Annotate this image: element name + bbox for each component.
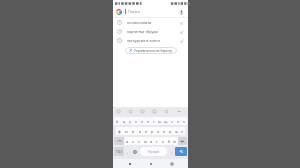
- button[interactable]: экскурсия в кинсл: [113, 36, 188, 45]
- staticText: я: [126, 139, 129, 144]
- button[interactable]: й: [114, 117, 121, 125]
- button[interactable]: с: [136, 137, 142, 145]
- staticText: л: [163, 129, 166, 134]
- button[interactable]: т: [154, 137, 160, 145]
- staticText: ц: [123, 119, 126, 124]
- button[interactable]: ы: [123, 127, 130, 135]
- staticText: б: [168, 139, 171, 144]
- staticText: к: [135, 119, 138, 124]
- button[interactable]: н: [145, 117, 151, 125]
- button[interactable]: к: [133, 117, 139, 125]
- staticText: т: [156, 139, 158, 144]
- staticText: ж: [175, 129, 178, 134]
- staticText: с: [138, 139, 140, 144]
- staticText: поликлиника: [127, 20, 152, 25]
- button[interactable]: Space: [140, 147, 167, 156]
- staticText: г: [153, 119, 155, 124]
- button[interactable]: и: [148, 137, 154, 145]
- button[interactable]: щ: [163, 117, 169, 125]
- button[interactable]: р: [149, 127, 155, 135]
- button[interactable]: ж: [173, 127, 179, 135]
- button[interactable]: з: [169, 117, 175, 125]
- staticText: щ: [164, 119, 168, 124]
- button[interactable]: х: [175, 117, 181, 125]
- staticText: ф: [118, 129, 121, 134]
- button[interactable]: More options: [176, 109, 182, 114]
- button[interactable]: Поиск: [113, 6, 188, 17]
- button[interactable]: Shift: [114, 137, 124, 145]
- staticText: картинки сбруди: [127, 29, 158, 34]
- staticText: ъ: [183, 119, 186, 124]
- staticText: н: [147, 119, 150, 124]
- button[interactable]: ъ: [181, 117, 187, 125]
- staticText: ?123: [116, 150, 123, 154]
- button[interactable]: Voice search: [177, 8, 185, 16]
- button[interactable]: ?123: [114, 147, 124, 156]
- button[interactable]: Stickers: [152, 109, 157, 114]
- button[interactable]: э: [179, 127, 185, 135]
- button[interactable]: ш: [157, 117, 163, 125]
- button[interactable]: ь: [160, 137, 166, 145]
- button[interactable]: ю: [172, 137, 178, 145]
- staticText: х: [177, 119, 179, 124]
- button[interactable]: Back: [125, 159, 134, 168]
- button[interactable]: Backspace: [178, 137, 187, 145]
- button[interactable]: Home: [146, 159, 155, 168]
- staticText: а: [139, 129, 142, 134]
- button[interactable]: м: [142, 137, 148, 145]
- button[interactable]: ц: [121, 117, 127, 125]
- button[interactable]: Search: [175, 147, 187, 156]
- staticText: й: [116, 119, 119, 124]
- button[interactable]: а: [137, 127, 143, 135]
- button[interactable]: Recents: [167, 159, 176, 168]
- staticText: у: [129, 119, 131, 124]
- button[interactable]: поликлиника: [113, 18, 188, 27]
- button[interactable]: Emoji: [128, 109, 133, 114]
- staticText: р: [151, 129, 154, 134]
- staticText: д: [169, 129, 172, 134]
- button[interactable]: Keyboard settings: [131, 146, 139, 157]
- staticText: о: [157, 129, 160, 134]
- button[interactable]: ч: [130, 137, 136, 145]
- button[interactable]: п: [143, 127, 149, 135]
- button[interactable]: GIF: [140, 109, 145, 114]
- staticText: Русский: [148, 150, 159, 154]
- staticText: ь: [162, 139, 165, 144]
- button[interactable]: ф: [116, 127, 123, 135]
- button[interactable]: о: [155, 127, 161, 135]
- button[interactable]: Settings: [164, 109, 169, 114]
- button[interactable]: в: [130, 127, 137, 135]
- staticText: ш: [158, 119, 162, 124]
- staticText: м: [144, 139, 147, 144]
- button[interactable]: Comma: [124, 146, 131, 157]
- staticText: ю: [173, 139, 177, 144]
- button[interactable]: г: [151, 117, 157, 125]
- button[interactable]: е: [139, 117, 145, 125]
- button[interactable]: д: [167, 127, 173, 135]
- staticText: ч: [132, 139, 135, 144]
- staticText: .: [171, 149, 173, 154]
- button[interactable]: я: [124, 137, 130, 145]
- button[interactable]: у: [127, 117, 133, 125]
- staticText: в: [132, 129, 135, 134]
- button[interactable]: Упражнения на барьер: [125, 47, 177, 54]
- staticText: э: [181, 129, 183, 134]
- staticText: е: [141, 119, 144, 124]
- staticText: п: [145, 129, 148, 134]
- staticText: ы: [125, 129, 128, 134]
- button[interactable]: б: [166, 137, 172, 145]
- staticText: з: [171, 119, 173, 124]
- button[interactable]: картинки сбруди: [113, 27, 188, 36]
- staticText: Поиск: [128, 9, 140, 14]
- staticText: Упражнения на барьер: [134, 48, 173, 53]
- staticText: и: [150, 139, 153, 144]
- button[interactable]: л: [161, 127, 167, 135]
- staticText: экскурсия в кинсл: [127, 38, 161, 43]
- staticText: ,: [127, 149, 129, 154]
- button[interactable]: Clipboard: [116, 109, 121, 114]
